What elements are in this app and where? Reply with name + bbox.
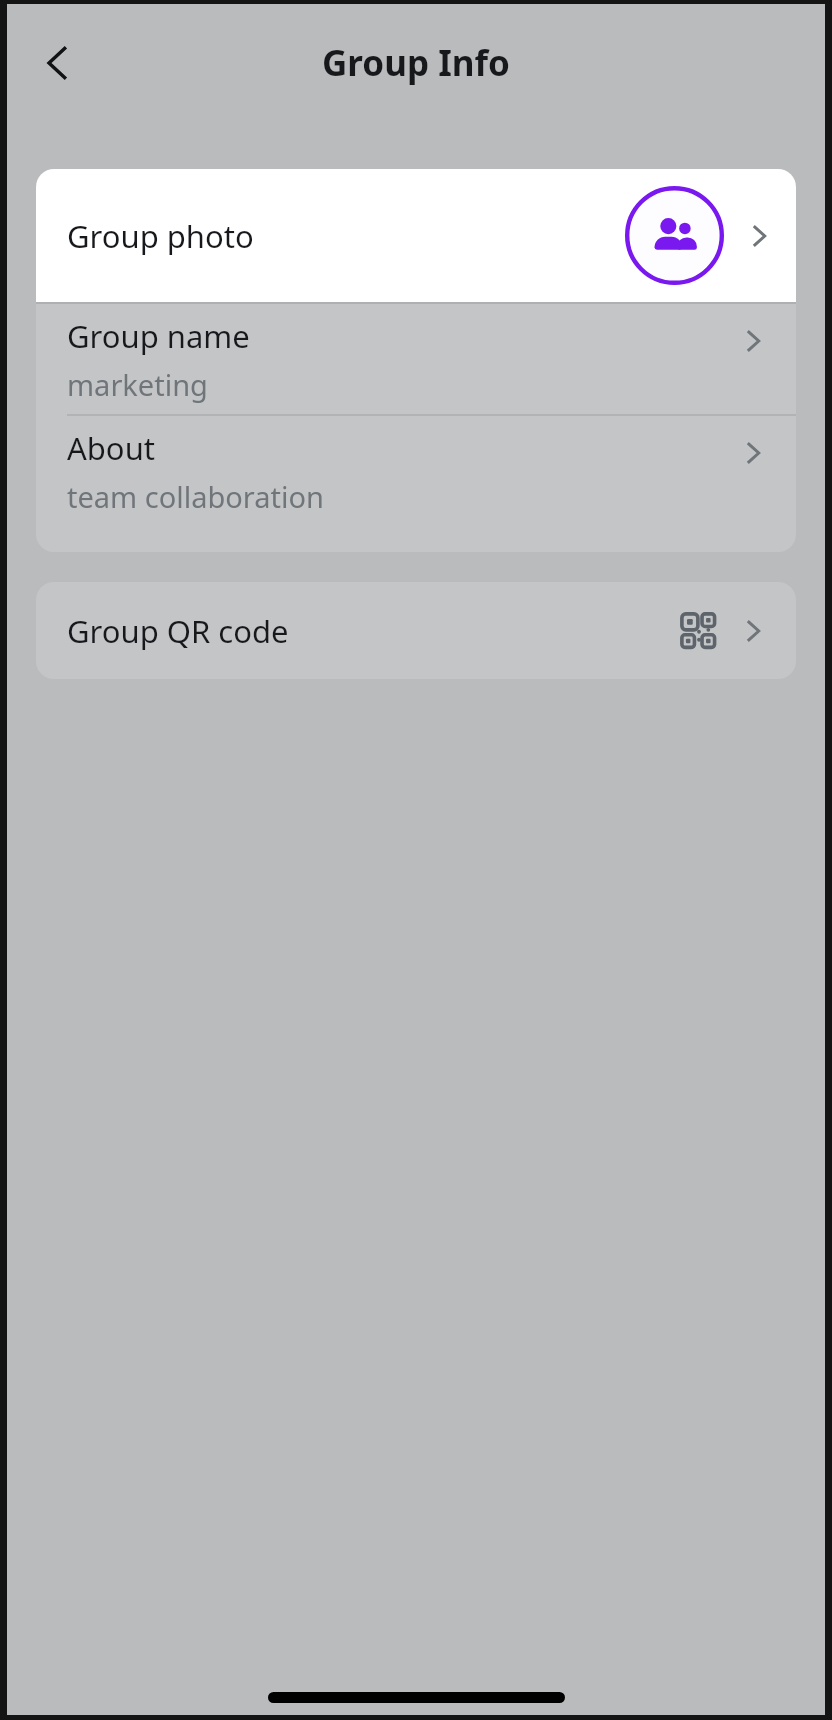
- button[interactable]: About: [36, 416, 796, 526]
- other: QR code: [680, 612, 718, 650]
- staticText: Group QR code: [67, 610, 289, 652]
- button[interactable]: Back: [27, 32, 89, 94]
- staticText: Group photo: [67, 215, 254, 257]
- button[interactable]: Group name: [36, 304, 796, 414]
- button[interactable]: Group QR code: [36, 582, 796, 679]
- staticText: team collaboration: [67, 477, 324, 516]
- staticText: Group Info: [322, 39, 510, 87]
- button[interactable]: Group photo: [36, 169, 796, 302]
- staticText: About: [67, 427, 155, 469]
- staticText: Group name: [67, 315, 250, 357]
- staticText: marketing: [67, 365, 208, 404]
